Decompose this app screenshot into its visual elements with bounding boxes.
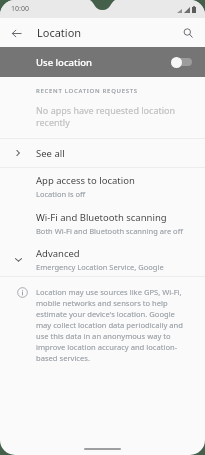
button[interactable]: Use location <box>0 47 205 77</box>
staticText: RECENT LOCATION REQUESTS <box>36 87 138 95</box>
staticText: Advanced <box>36 247 80 260</box>
staticText: Wi-Fi and Bluetooth scanning <box>36 211 167 224</box>
button[interactable]: Back <box>6 23 26 43</box>
button[interactable]: App access to location <box>0 168 205 205</box>
button[interactable]: Search <box>178 23 198 43</box>
staticText: Emergency Location Service, Google Locat… <box>36 262 195 272</box>
staticText: Both Wi-Fi and Bluetooth scanning are of… <box>36 226 183 236</box>
staticText: Location may use sources like GPS, Wi-Fi… <box>36 287 191 363</box>
staticText: Use location <box>36 56 92 69</box>
staticText: Location is off <box>36 189 86 199</box>
button[interactable]: See all <box>0 139 205 167</box>
button[interactable]: Wi-Fi and Bluetooth scanning <box>0 205 205 242</box>
button[interactable]: Advanced <box>0 242 205 276</box>
staticText: App access to location <box>36 174 135 187</box>
staticText: 10:00 <box>11 4 29 14</box>
staticText: See all <box>36 147 65 160</box>
staticText: Location <box>37 25 82 40</box>
staticText: No apps have requested location recently <box>36 104 205 128</box>
